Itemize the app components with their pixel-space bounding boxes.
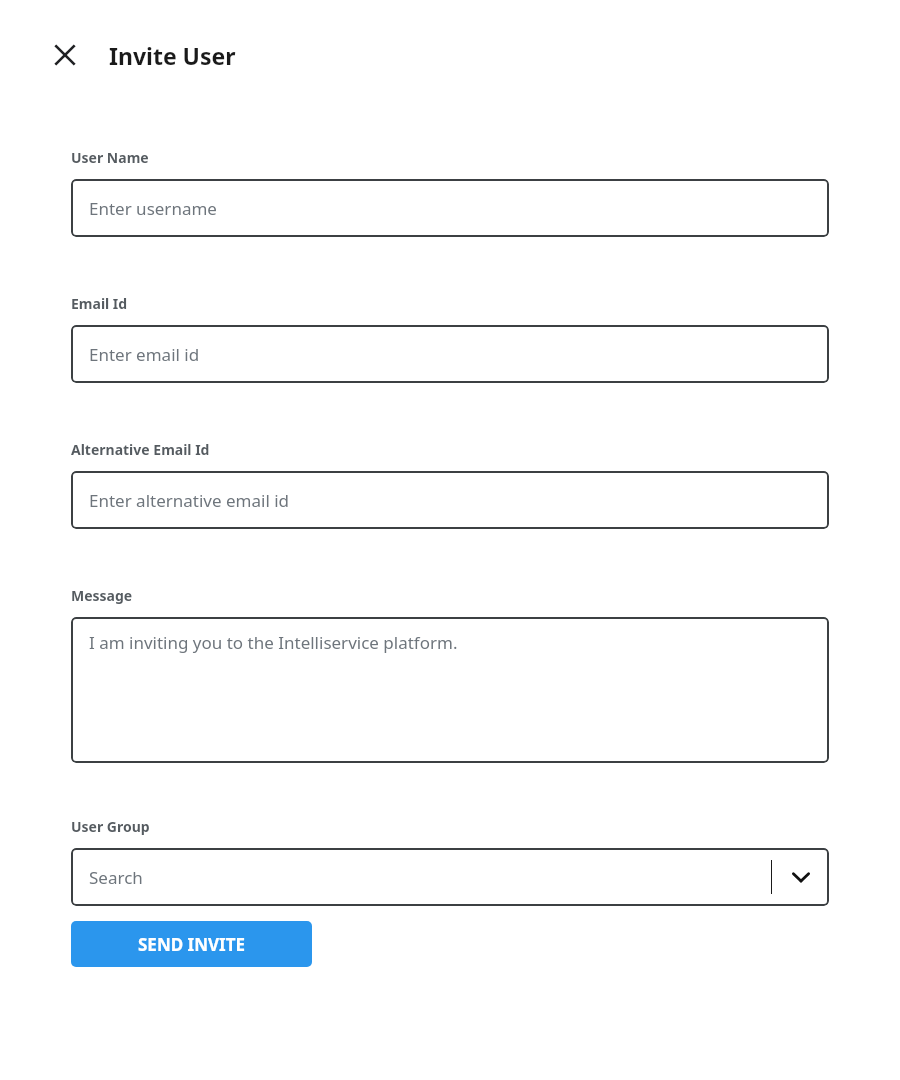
staticText: User Name [71, 148, 149, 167]
staticText: Search [89, 866, 143, 889]
staticText: Email Id [71, 294, 128, 313]
staticText: Enter username [89, 197, 217, 220]
button[interactable]: Enter username [71, 179, 829, 237]
staticText: I am inviting you to the Intelliservice … [89, 631, 458, 654]
button[interactable]: Enter email id [71, 325, 829, 383]
staticText: Enter alternative email id [89, 489, 290, 512]
button[interactable]: Close [44, 34, 86, 76]
staticText: Alternative Email Id [71, 440, 210, 459]
button[interactable]: SEND INVITE [71, 921, 312, 967]
staticText: Message [71, 586, 133, 605]
button[interactable]: Enter alternative email id [71, 471, 829, 529]
staticText: Invite User [109, 40, 236, 71]
staticText: SEND INVITE [138, 933, 245, 956]
staticText: Enter email id [89, 343, 200, 366]
button[interactable]: I am inviting you to the Intelliservice … [71, 617, 829, 763]
button[interactable]: User group dropdown [71, 848, 829, 906]
staticText: User Group [71, 817, 150, 836]
